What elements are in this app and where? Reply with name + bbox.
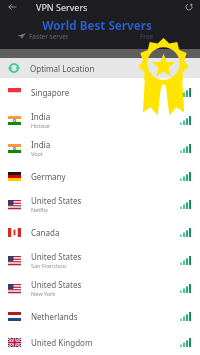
staticText: Hotstar [31, 122, 51, 129]
staticText: Canada [31, 227, 60, 238]
staticText: United States [31, 251, 82, 262]
staticText: VPN Servers [36, 1, 88, 13]
staticText: United States [31, 195, 82, 206]
button[interactable]: Germany [0, 162, 200, 190]
staticText: India [31, 111, 51, 122]
staticText: United Kingdom [31, 337, 93, 348]
button[interactable]: Refresh [182, 0, 196, 14]
button[interactable]: India [0, 106, 200, 134]
staticText: Free [140, 32, 154, 41]
staticText: Singapore [31, 87, 70, 98]
staticText: Netflix [31, 206, 48, 213]
button[interactable]: Back [5, 0, 19, 14]
staticText: Netherlands [31, 311, 78, 322]
button[interactable]: Canada [0, 218, 200, 246]
button[interactable]: United States [0, 246, 200, 274]
button[interactable]: United States [0, 274, 200, 302]
staticText: San Francisco [31, 262, 67, 269]
staticText: Voot [31, 150, 43, 157]
staticText: Optimal Location [30, 63, 95, 74]
staticText: Germany [31, 171, 66, 182]
staticText: New York [31, 290, 56, 297]
button[interactable]: Singapore [0, 78, 200, 106]
button[interactable]: Optimal Location [0, 58, 200, 78]
staticText: United States [31, 279, 82, 290]
staticText: Faster server [29, 32, 69, 41]
button[interactable]: United Kingdom [0, 330, 200, 355]
staticText: India [31, 139, 51, 150]
button[interactable]: India [0, 134, 200, 162]
button[interactable]: United States [0, 190, 200, 218]
button[interactable]: Netherlands [0, 302, 200, 330]
staticText: World Best Servers [0, 17, 197, 33]
